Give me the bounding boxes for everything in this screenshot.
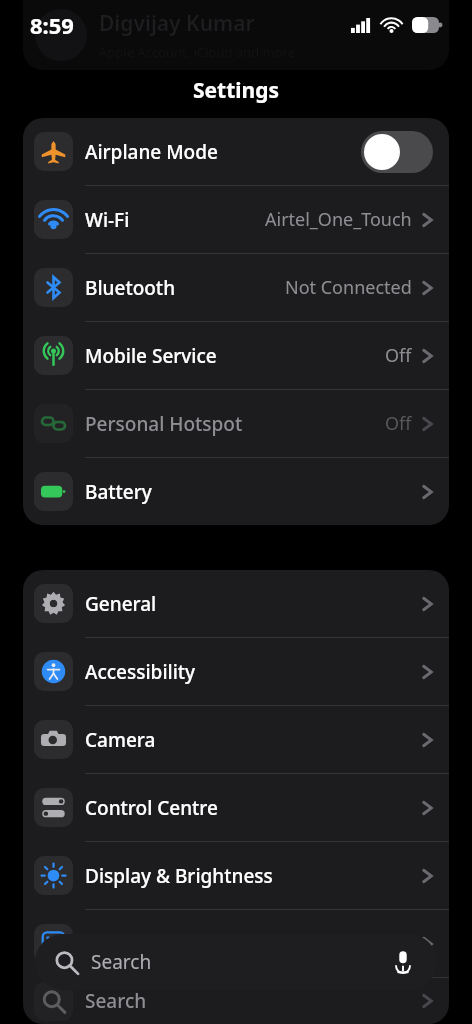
staticText: Control Centre (85, 795, 218, 821)
staticText: Display & Brightness (85, 863, 273, 889)
staticText: Bluetooth (85, 275, 176, 301)
staticText: Camera (85, 727, 156, 753)
staticText: Search (85, 988, 147, 1014)
button[interactable]: Battery (23, 458, 449, 525)
button[interactable]: Personal Hotspot (23, 390, 449, 457)
staticText: Home Screen & App Library (85, 931, 335, 957)
button[interactable]: Wi-Fi (23, 186, 449, 253)
staticText: Airtel_One_Touch (265, 207, 412, 232)
button[interactable]: Display & Brightness (23, 842, 449, 909)
staticText: Wi-Fi (85, 207, 130, 233)
button[interactable]: Search (23, 978, 449, 1024)
staticText: Airplane Mode (85, 139, 218, 165)
staticText: General (85, 591, 157, 617)
button[interactable]: General (23, 570, 449, 637)
staticText: Battery (85, 479, 152, 505)
staticText: Search (91, 949, 152, 975)
staticText: Personal Hotspot (85, 411, 243, 437)
button[interactable]: Camera (23, 706, 449, 773)
button[interactable]: Voice search (389, 948, 417, 976)
staticText: Not Connected (285, 275, 412, 300)
button[interactable]: Home Screen & App Library (23, 910, 449, 977)
button[interactable]: Control Centre (23, 774, 449, 841)
button[interactable]: Accessibility (23, 638, 449, 705)
button[interactable]: Bluetooth (23, 254, 449, 321)
staticText: Digvijay Kumar (99, 9, 255, 38)
button[interactable]: Airplane Mode (23, 118, 449, 185)
staticText: Off (385, 343, 412, 368)
button[interactable]: Search (35, 934, 437, 990)
staticText: Off (385, 411, 412, 436)
staticText: 8:59 (30, 10, 74, 40)
button[interactable]: Airplane Mode toggle (361, 131, 433, 173)
staticText: Settings (0, 76, 472, 105)
staticText: Mobile Service (85, 343, 217, 369)
button[interactable]: Mobile Service (23, 322, 449, 389)
staticText: Accessibility (85, 659, 196, 685)
